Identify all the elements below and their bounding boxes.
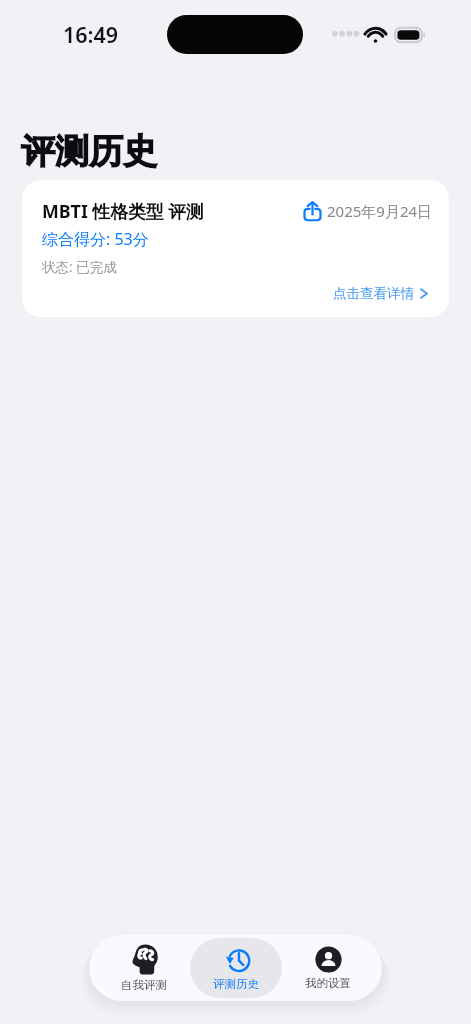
staticText: 评测历史	[213, 977, 259, 991]
staticText: MBTI 性格类型 评测	[42, 199, 204, 223]
staticText: 综合得分: 53分	[42, 228, 149, 250]
button[interactable]: 我的设置	[282, 938, 374, 998]
staticText: 评测历史	[21, 130, 157, 173]
button[interactable]: 分享	[301, 199, 323, 223]
button[interactable]: MBTI 性格类型 评测	[22, 180, 449, 317]
staticText: 2025年9月24日	[327, 201, 433, 221]
staticText: 状态: 已完成	[42, 258, 117, 276]
staticText: 16:49	[63, 20, 119, 49]
button[interactable]: 自我评测	[98, 938, 190, 998]
staticText: 自我评测	[121, 978, 167, 992]
staticText: 我的设置	[305, 976, 351, 990]
button[interactable]: 评测历史	[190, 938, 282, 998]
staticText: 点击查看详情	[333, 285, 414, 302]
